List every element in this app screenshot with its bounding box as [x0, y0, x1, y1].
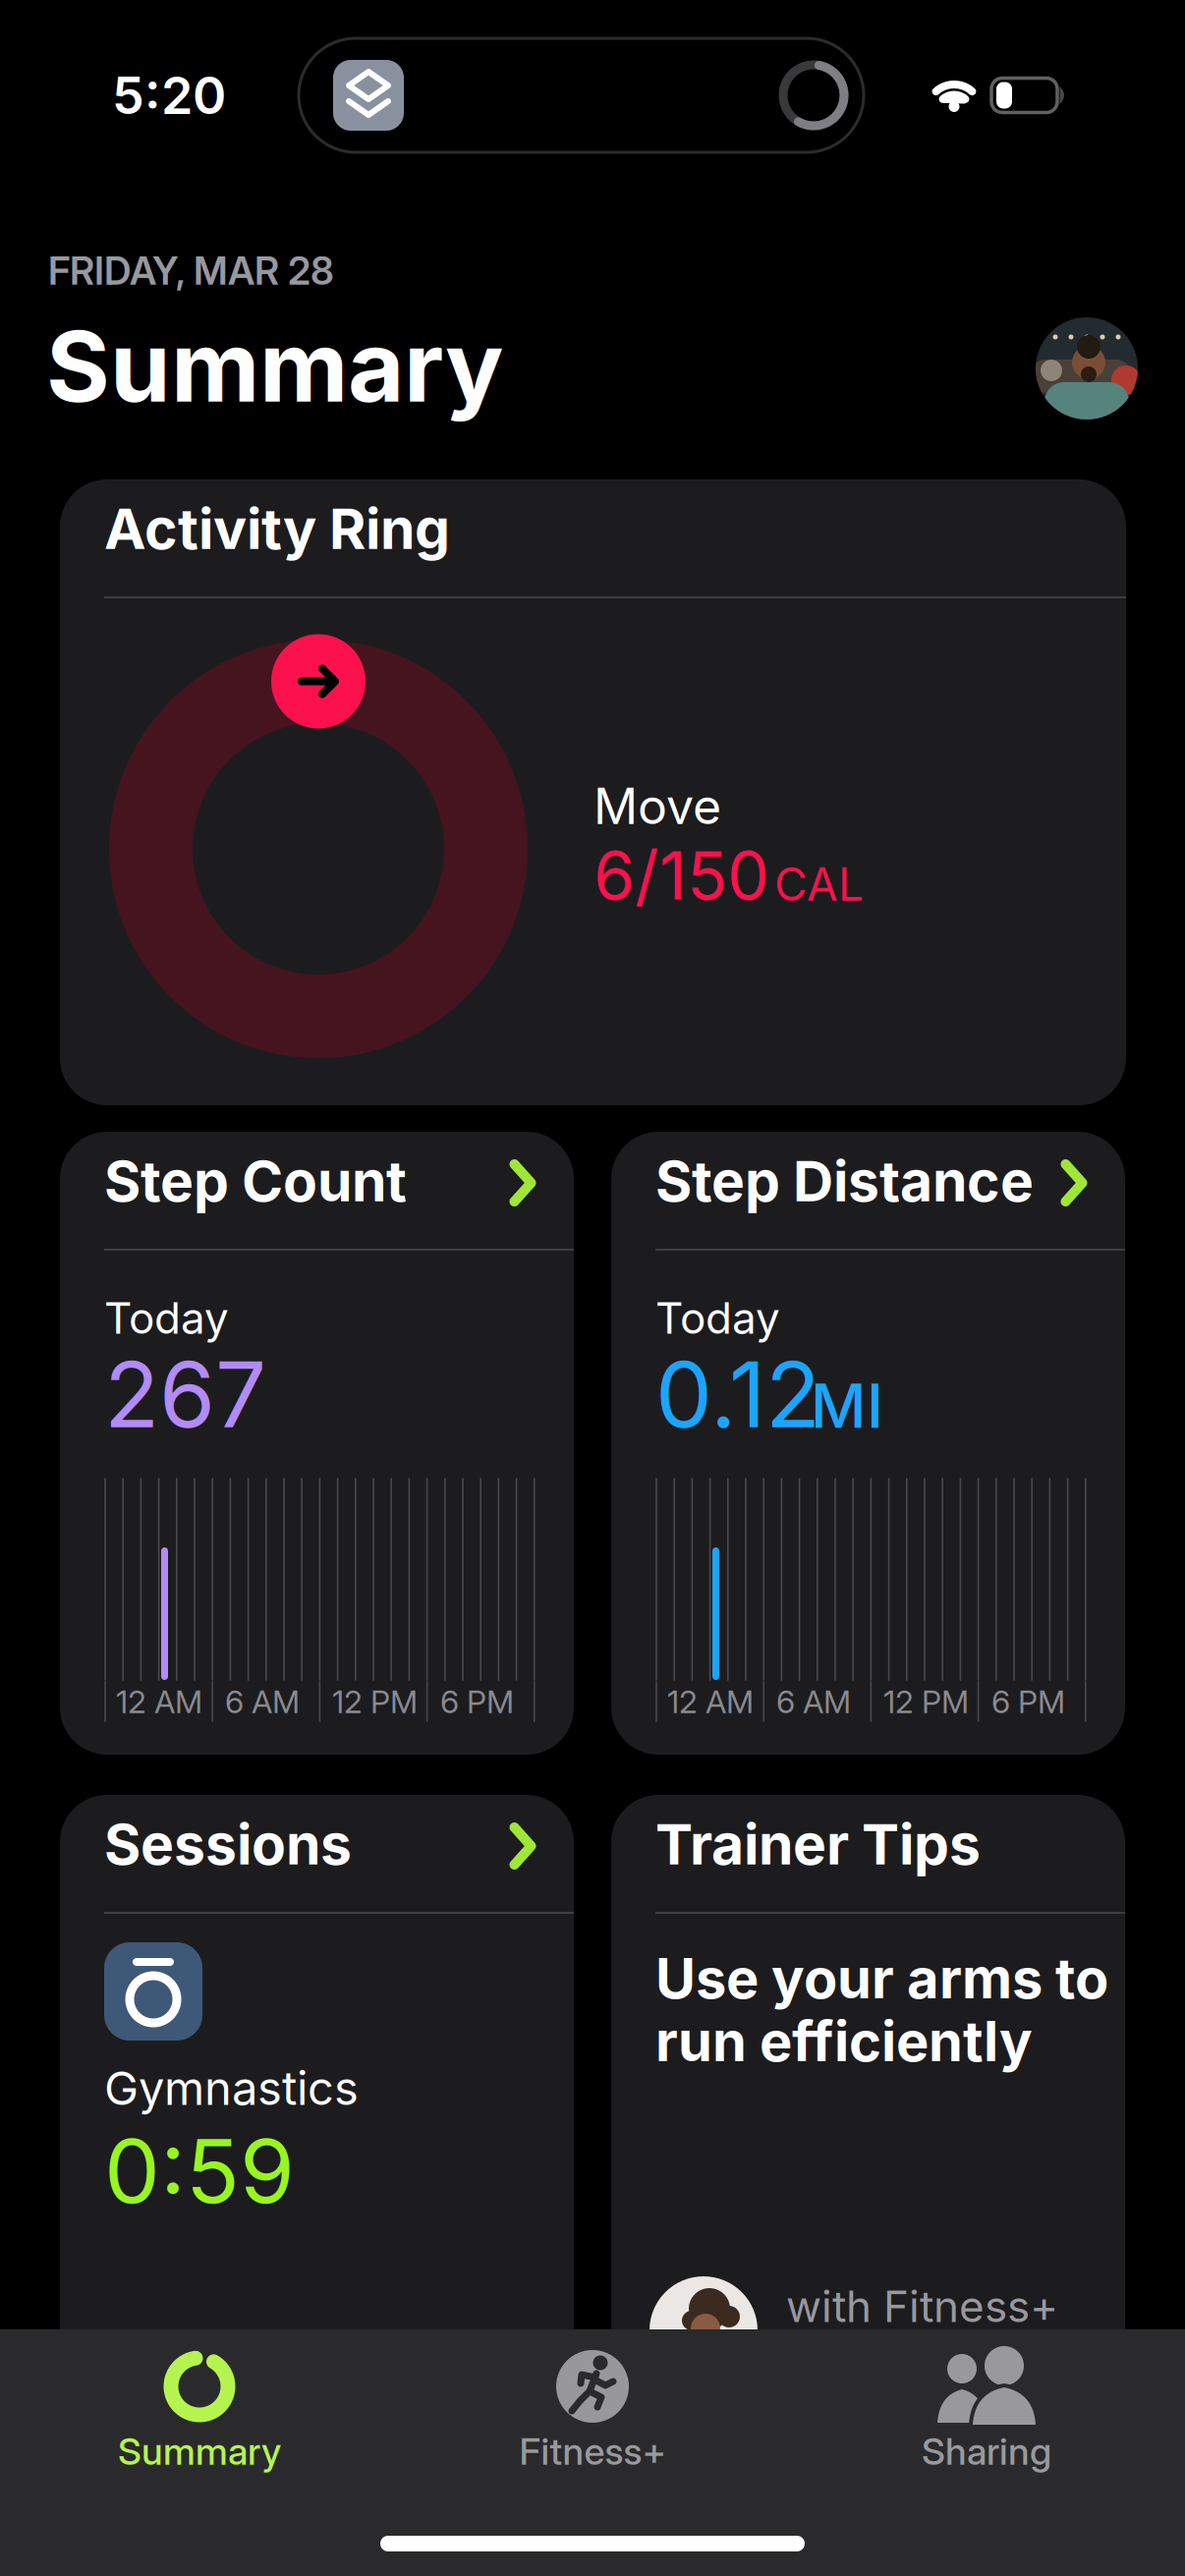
staticText: Activity Ring — [104, 495, 450, 561]
staticText: 12 AM — [667, 1683, 754, 1720]
staticText: Step Distance — [655, 1148, 1034, 1214]
staticText: Gymnastics — [104, 2061, 359, 2115]
staticText: FRIDAY, MAR 28 — [48, 248, 334, 293]
staticText: Trainer Tips — [655, 1811, 981, 1877]
button[interactable]: Step Distance — [611, 1132, 1125, 1755]
staticText: Today — [104, 1292, 229, 1343]
staticText: Use your arms to — [655, 1946, 1108, 2011]
staticText: 6/150 — [593, 836, 769, 915]
staticText: 6 PM — [991, 1683, 1065, 1720]
staticText: 267 — [104, 1341, 266, 1448]
staticText: 6 AM — [225, 1683, 300, 1720]
button[interactable]: Activity Ring — [60, 479, 1126, 1105]
staticText: 12 PM — [332, 1683, 418, 1720]
staticText: Sharing — [922, 2429, 1051, 2473]
staticText: Fitness+ — [519, 2429, 666, 2473]
button[interactable]: Step Count — [60, 1132, 574, 1755]
button[interactable]: Trainer Tips — [611, 1795, 1125, 2576]
staticText: CAL — [774, 858, 864, 911]
button[interactable]: Fitness+ — [425, 2329, 760, 2516]
staticText: with Fitness+ — [786, 2281, 1058, 2332]
staticText: 6 AM — [776, 1683, 851, 1720]
staticText: 0.12 — [655, 1341, 820, 1448]
staticText: MI — [811, 1370, 883, 1441]
staticText: Today — [655, 1292, 780, 1343]
button[interactable]: Sessions — [60, 1795, 574, 2576]
staticText: 12 AM — [116, 1683, 202, 1720]
staticText: Summary — [46, 309, 504, 423]
staticText: 0:59 — [104, 2119, 295, 2223]
staticText: Sessions — [104, 1811, 352, 1877]
staticText: Move — [593, 777, 721, 835]
button[interactable]: Sharing — [819, 2329, 1154, 2516]
staticText: 6 PM — [440, 1683, 514, 1720]
button[interactable]: Summary — [32, 2329, 367, 2516]
button[interactable] — [1036, 317, 1138, 420]
staticText: 5:20 — [112, 65, 226, 125]
staticText: 12 PM — [883, 1683, 969, 1720]
staticText: Summary — [118, 2429, 281, 2473]
staticText: Step Count — [104, 1148, 407, 1214]
staticText: run efficiently — [655, 2009, 1033, 2074]
